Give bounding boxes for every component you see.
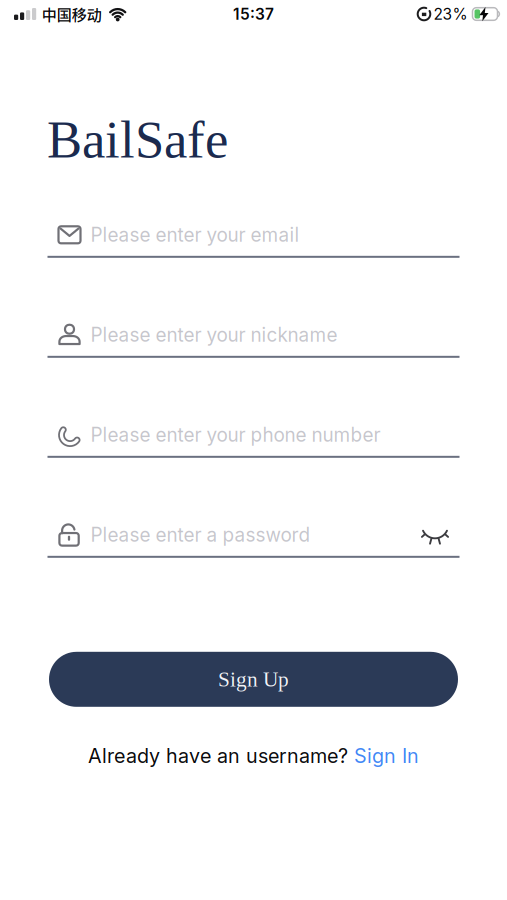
staticText: Already have an username?	[88, 744, 354, 768]
staticText: 15:37	[233, 5, 274, 23]
button[interactable]: Sign In	[354, 744, 419, 768]
staticText: 中国移动	[42, 3, 102, 25]
staticText: Please enter your email	[90, 223, 299, 246]
button[interactable]: Phone number	[47, 423, 459, 458]
staticText: Sign In	[354, 744, 419, 768]
staticText: Sign Up	[218, 667, 289, 691]
staticText: Please enter your phone number	[90, 423, 380, 446]
button[interactable]: Nickname	[47, 323, 459, 358]
staticText: Please enter your nickname	[90, 323, 337, 346]
button[interactable]: Password	[47, 523, 459, 558]
button[interactable]: Show password	[422, 526, 447, 544]
staticText: BailSafe	[47, 110, 228, 169]
button[interactable]: Email	[47, 223, 459, 258]
staticText: 23%	[433, 5, 467, 23]
button[interactable]: Sign Up	[49, 652, 458, 707]
staticText: Please enter a password	[90, 523, 310, 546]
